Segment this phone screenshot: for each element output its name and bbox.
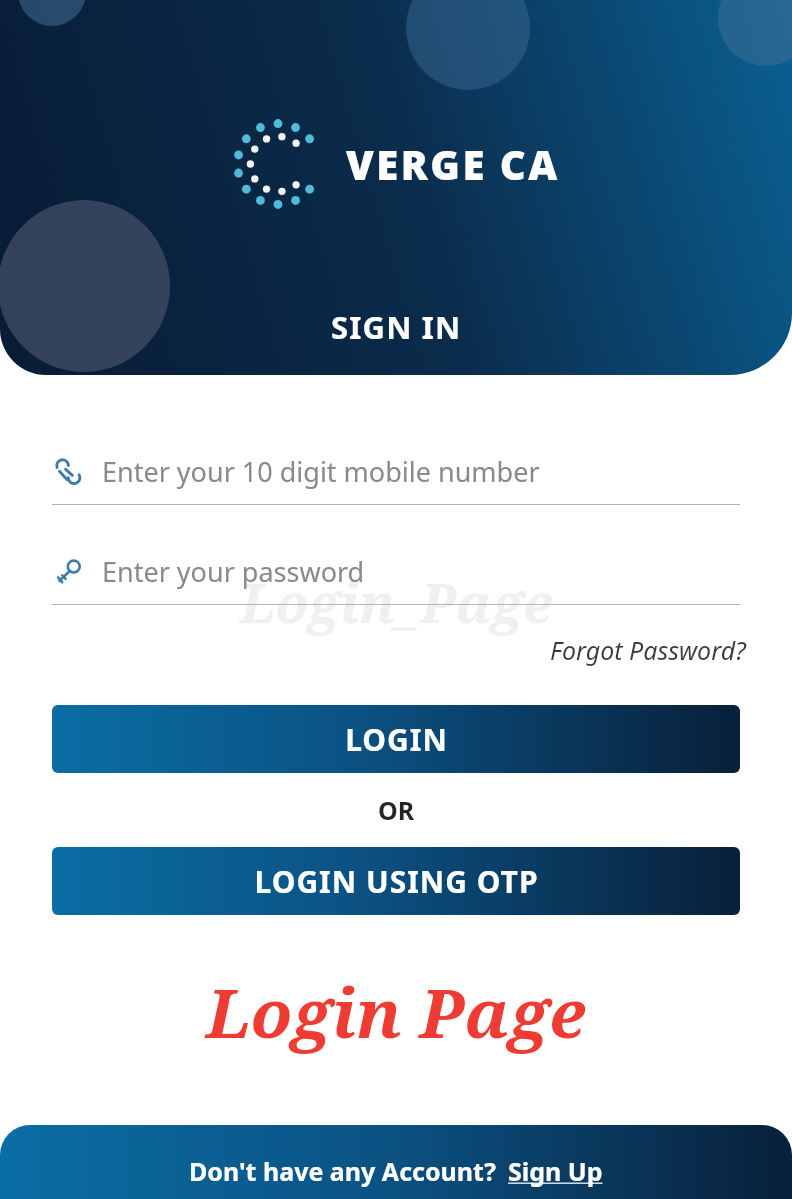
staticText: Login Page xyxy=(206,965,586,1058)
button[interactable]: Forgot Password? xyxy=(0,633,746,667)
button[interactable]: Phone xyxy=(52,453,740,505)
other: Phone xyxy=(52,455,86,489)
button[interactable]: Password xyxy=(52,553,740,605)
button[interactable]: LOGIN USING OTP xyxy=(52,847,740,915)
staticText: SIGN IN xyxy=(331,306,462,348)
staticText: Login_Page xyxy=(240,565,553,639)
staticText: Sign Up xyxy=(508,1154,603,1188)
button[interactable]: LOGIN xyxy=(52,705,740,773)
staticText: OR xyxy=(378,793,415,827)
staticText: LOGIN USING OTP xyxy=(254,861,539,902)
staticText: Don't have any Account? xyxy=(189,1154,496,1188)
staticText: Enter your 10 digit mobile number xyxy=(102,453,540,490)
staticText: Enter your password xyxy=(102,553,365,590)
staticText: VERGE CA xyxy=(346,137,560,191)
button[interactable]: Don't have any Account? xyxy=(0,1125,792,1199)
other: Password xyxy=(52,555,86,589)
staticText: Forgot Password? xyxy=(550,633,746,667)
staticText: LOGIN xyxy=(345,719,448,760)
